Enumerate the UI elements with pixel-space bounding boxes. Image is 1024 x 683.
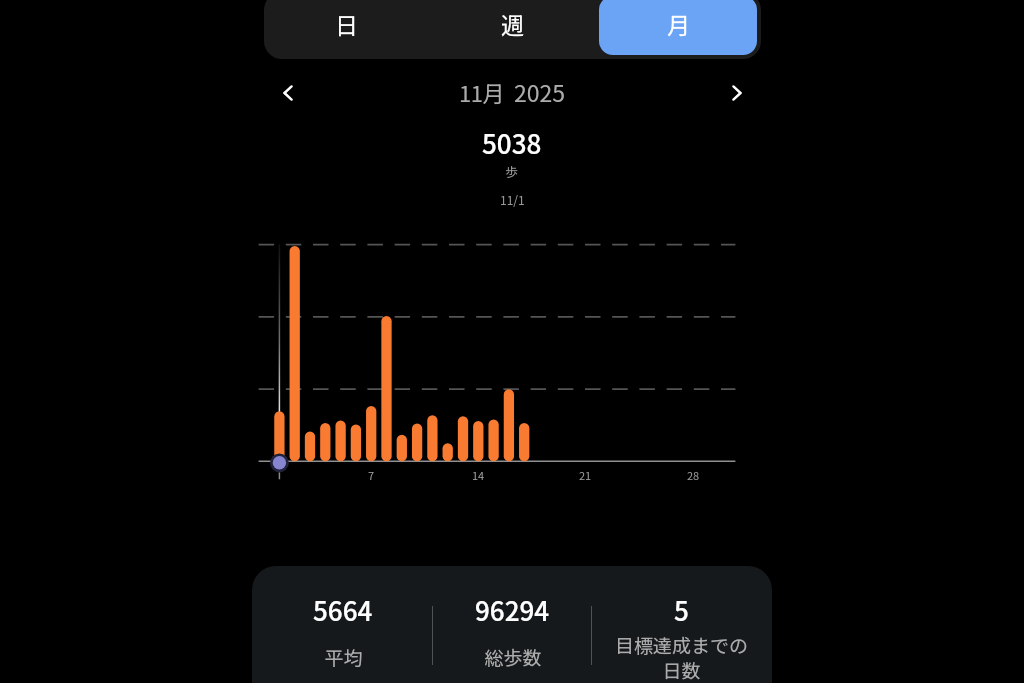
- staticText: 21: [579, 467, 592, 483]
- staticText: 5: [674, 591, 689, 629]
- staticText: 14: [472, 467, 485, 483]
- staticText: 5038: [482, 124, 542, 162]
- staticText: 平均: [324, 643, 363, 671]
- button[interactable]: Next month: [719, 77, 755, 109]
- staticText: 日: [335, 7, 358, 40]
- staticText: 5664: [313, 591, 373, 629]
- button[interactable]: 週: [433, 0, 591, 55]
- button[interactable]: 5664: [258, 591, 428, 683]
- staticText: 96294: [475, 591, 550, 629]
- staticText: 目標達成までの日数: [609, 631, 754, 683]
- button[interactable]: 5: [597, 591, 766, 683]
- staticText: 総歩数: [484, 643, 542, 671]
- button[interactable]: 11月: [312, 74, 712, 108]
- staticText: 11月: [459, 76, 505, 108]
- button[interactable]: Previous month: [270, 77, 306, 109]
- staticText: 週: [501, 7, 524, 40]
- button[interactable]: 日: [268, 0, 425, 55]
- staticText: 11/1: [500, 191, 525, 208]
- staticText: 7: [368, 467, 375, 483]
- staticText: 28: [687, 467, 700, 483]
- staticText: 2025: [514, 75, 566, 108]
- staticText: 歩: [505, 162, 519, 181]
- button[interactable]: 96294: [428, 591, 597, 683]
- staticText: 月: [667, 7, 690, 40]
- button[interactable]: 月: [599, 0, 757, 55]
